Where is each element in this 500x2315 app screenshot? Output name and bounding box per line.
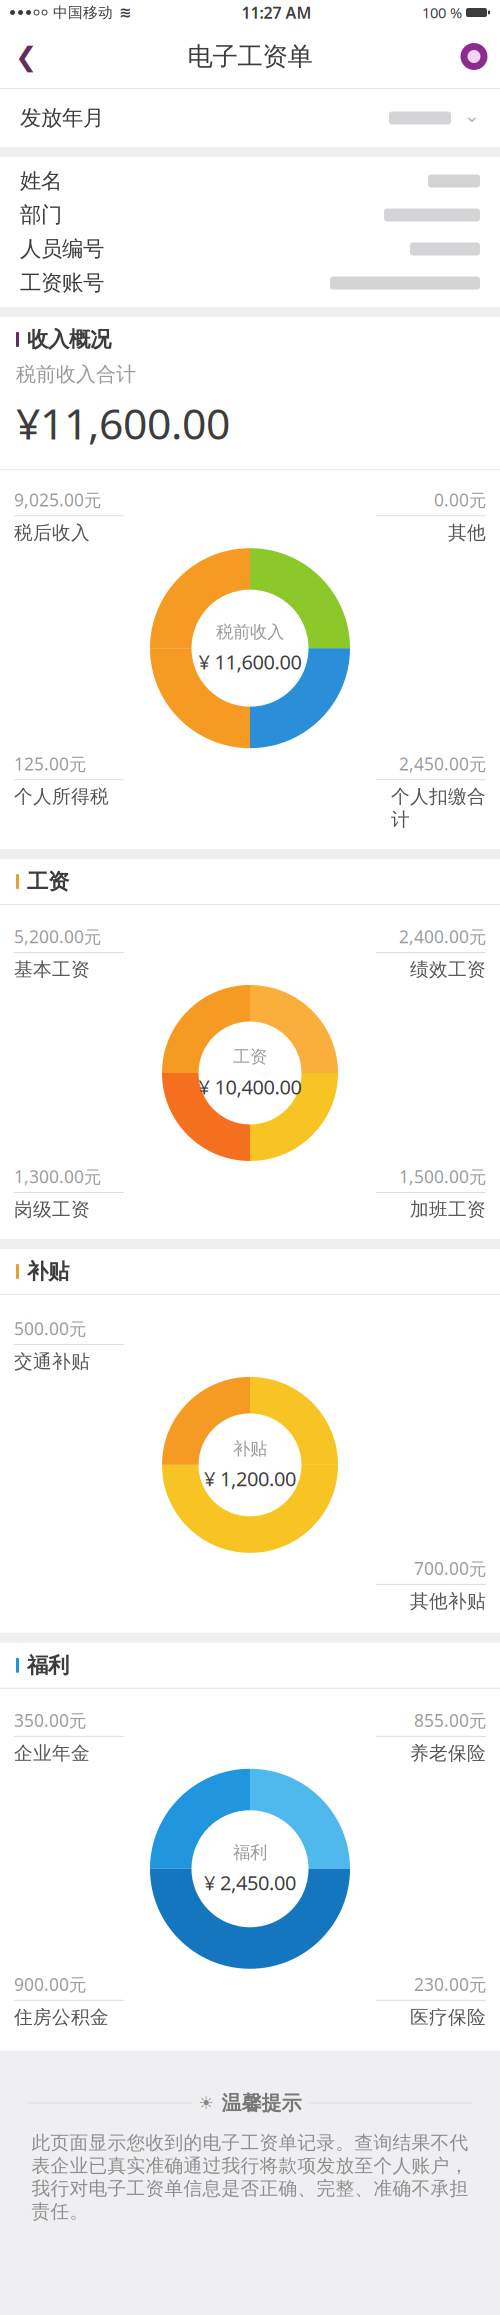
button[interactable]: 客服: [451, 33, 497, 79]
staticText: 福利: [233, 1842, 267, 1863]
staticText: 2,400.00元: [399, 925, 486, 948]
button[interactable]: 发放年月: [0, 89, 500, 147]
staticText: 此页面显示您收到的电子工资单记录。查询结果不代表企业已真实准确通过我行将款项发放…: [31, 2131, 468, 2223]
staticText: 500.00元: [14, 1317, 86, 1340]
staticText: 补贴: [233, 1438, 267, 1459]
staticText: 700.00元: [414, 1557, 486, 1580]
staticText: 0.00元: [434, 488, 486, 511]
staticText: 其他补贴: [410, 1590, 486, 1613]
staticText: 住房公积金: [14, 2006, 109, 2029]
staticText: 绩效工资: [410, 958, 486, 981]
staticText: 补贴: [27, 1258, 69, 1284]
staticText: 900.00元: [14, 1973, 86, 1996]
staticText: 收入概况: [27, 326, 111, 353]
staticText: 其他: [448, 521, 486, 544]
staticText: ≋: [119, 4, 131, 21]
staticText: 1,300.00元: [14, 1165, 101, 1188]
staticText: 交通补贴: [14, 1350, 90, 1373]
staticText: ¥ 1,200.00: [204, 1465, 296, 1492]
staticText: ¥ 11,600.00: [198, 648, 301, 675]
staticText: 企业年金: [14, 1742, 90, 1765]
staticText: 税后收入: [14, 521, 90, 544]
staticText: 2,450.00元: [399, 752, 486, 775]
button[interactable]: 返回: [3, 33, 49, 79]
staticText: 个人所得税: [14, 785, 109, 808]
staticText: 350.00元: [14, 1709, 86, 1732]
staticText: 工资: [27, 868, 69, 895]
staticText: 人员编号: [20, 236, 104, 262]
staticText: 医疗保险: [410, 2006, 486, 2029]
staticText: 11:27 AM: [241, 2, 311, 23]
staticText: 中国移动: [53, 3, 113, 21]
staticText: ❮: [15, 41, 37, 72]
staticText: 个人扣缴合计: [391, 785, 486, 831]
staticText: 855.00元: [414, 1709, 486, 1732]
staticText: 工资账号: [20, 270, 104, 296]
staticText: 100 %: [422, 3, 462, 22]
staticText: 姓名: [20, 168, 62, 194]
staticText: ⌄: [464, 105, 480, 126]
staticText: ¥ 2,450.00: [204, 1869, 296, 1896]
staticText: 1,500.00元: [399, 1165, 486, 1188]
staticText: 部门: [20, 202, 62, 228]
staticText: 230.00元: [414, 1973, 486, 1996]
staticText: 工资: [233, 1046, 267, 1067]
staticText: 9,025.00元: [14, 488, 101, 511]
staticText: 发放年月: [20, 105, 104, 131]
staticText: ¥ 10,400.00: [198, 1073, 301, 1100]
staticText: 税前收入合计: [16, 362, 136, 387]
staticText: 税前收入: [216, 621, 284, 642]
staticText: 温馨提示: [221, 2091, 301, 2115]
staticText: 加班工资: [410, 1198, 486, 1221]
staticText: 基本工资: [14, 958, 90, 981]
staticText: 福利: [27, 1652, 69, 1678]
staticText: 养老保险: [410, 1742, 486, 1765]
staticText: 125.00元: [14, 752, 86, 775]
staticText: 5,200.00元: [14, 925, 101, 948]
staticText: ¥11,600.00: [16, 395, 230, 451]
staticText: ☀: [198, 2093, 214, 2113]
staticText: 岗级工资: [14, 1198, 90, 1221]
staticText: 电子工资单: [187, 41, 312, 72]
